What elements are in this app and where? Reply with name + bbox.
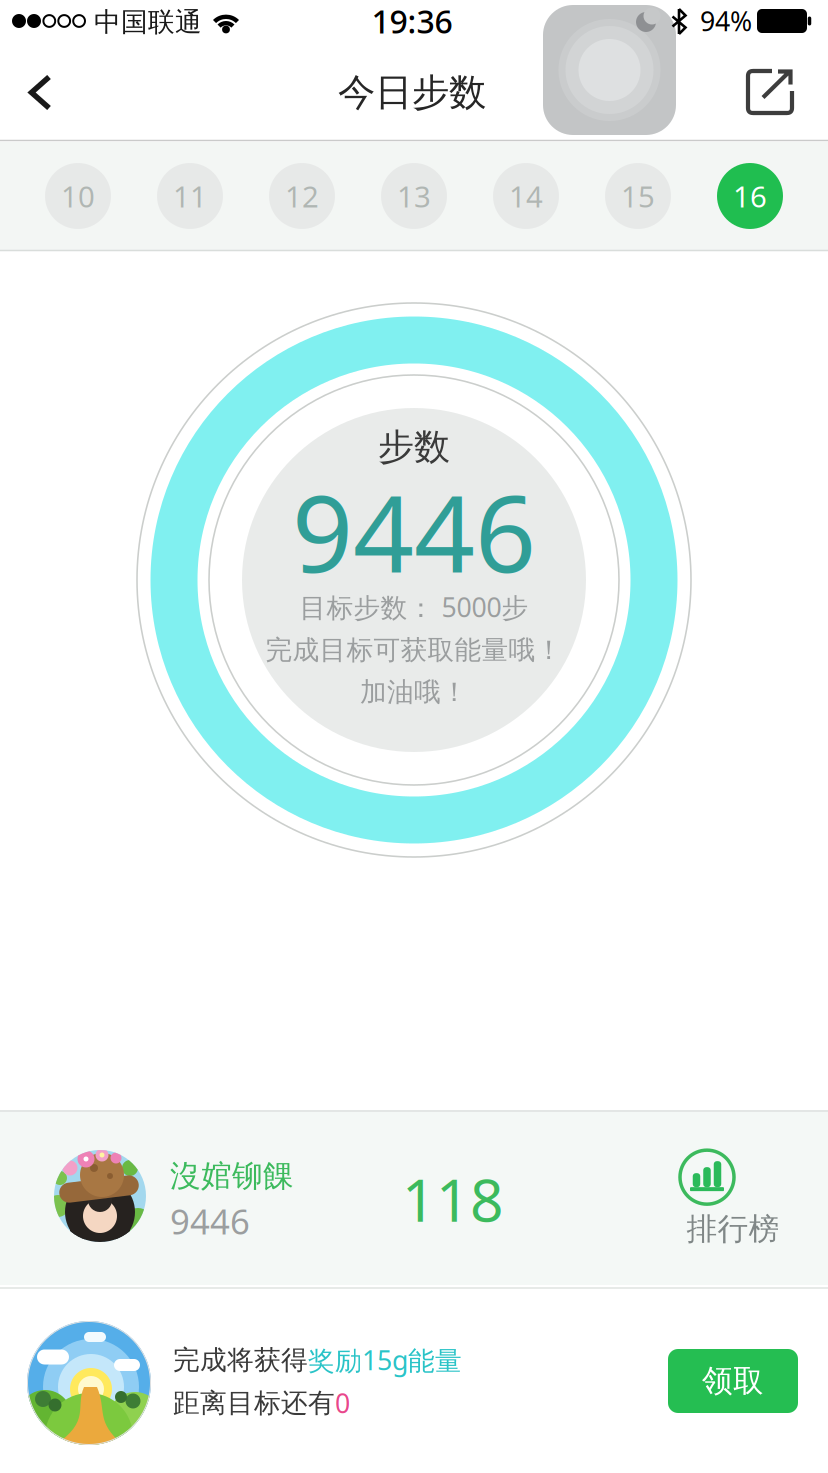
button[interactable]: 14 bbox=[493, 163, 559, 229]
staticText: 距离目标还有 bbox=[173, 1387, 335, 1419]
staticText: 13 bbox=[397, 176, 431, 215]
staticText: 沒婠铆餜 bbox=[170, 1157, 294, 1195]
staticText: 领取 bbox=[702, 1362, 764, 1400]
staticText: 今日步数 bbox=[338, 70, 486, 115]
button[interactable]: 领取 bbox=[668, 1349, 798, 1413]
staticText: 完成将获得 bbox=[173, 1344, 308, 1376]
button[interactable]: 16 bbox=[717, 163, 783, 229]
button[interactable]: 11 bbox=[157, 163, 223, 229]
staticText: 排行榜 bbox=[686, 1210, 779, 1248]
staticText: 0 bbox=[335, 1385, 350, 1421]
staticText: 12 bbox=[285, 176, 319, 215]
staticText: 15 bbox=[621, 176, 655, 215]
button[interactable]: 排行榜 bbox=[673, 1150, 766, 1248]
button[interactable]: AssistiveTouch bbox=[543, 5, 676, 135]
button[interactable]: 15 bbox=[605, 163, 671, 229]
staticText: 118 bbox=[402, 1160, 504, 1238]
staticText: 加油哦！ bbox=[360, 676, 468, 708]
staticText: 完成目标可获取能量哦！ bbox=[265, 634, 562, 666]
staticText: 9446 bbox=[170, 1198, 250, 1244]
staticText: 奖励15g能量 bbox=[308, 1342, 462, 1378]
staticText: 9446 bbox=[292, 460, 536, 602]
staticText: 16 bbox=[733, 176, 767, 215]
staticText: 步数 bbox=[378, 425, 450, 469]
button[interactable]: Back bbox=[10, 62, 70, 122]
staticText: 94% bbox=[700, 3, 752, 39]
button[interactable]: 10 bbox=[45, 163, 111, 229]
staticText: 19:36 bbox=[371, 0, 452, 42]
staticText: 10 bbox=[61, 176, 95, 215]
staticText: 14 bbox=[509, 176, 543, 215]
staticText: 中国联通 bbox=[94, 6, 202, 38]
staticText: 目标步数： 5000步 bbox=[299, 589, 528, 625]
button[interactable]: 13 bbox=[381, 163, 447, 229]
button[interactable]: Share bbox=[738, 60, 802, 124]
button[interactable]: 12 bbox=[269, 163, 335, 229]
staticText: 11 bbox=[173, 176, 207, 215]
